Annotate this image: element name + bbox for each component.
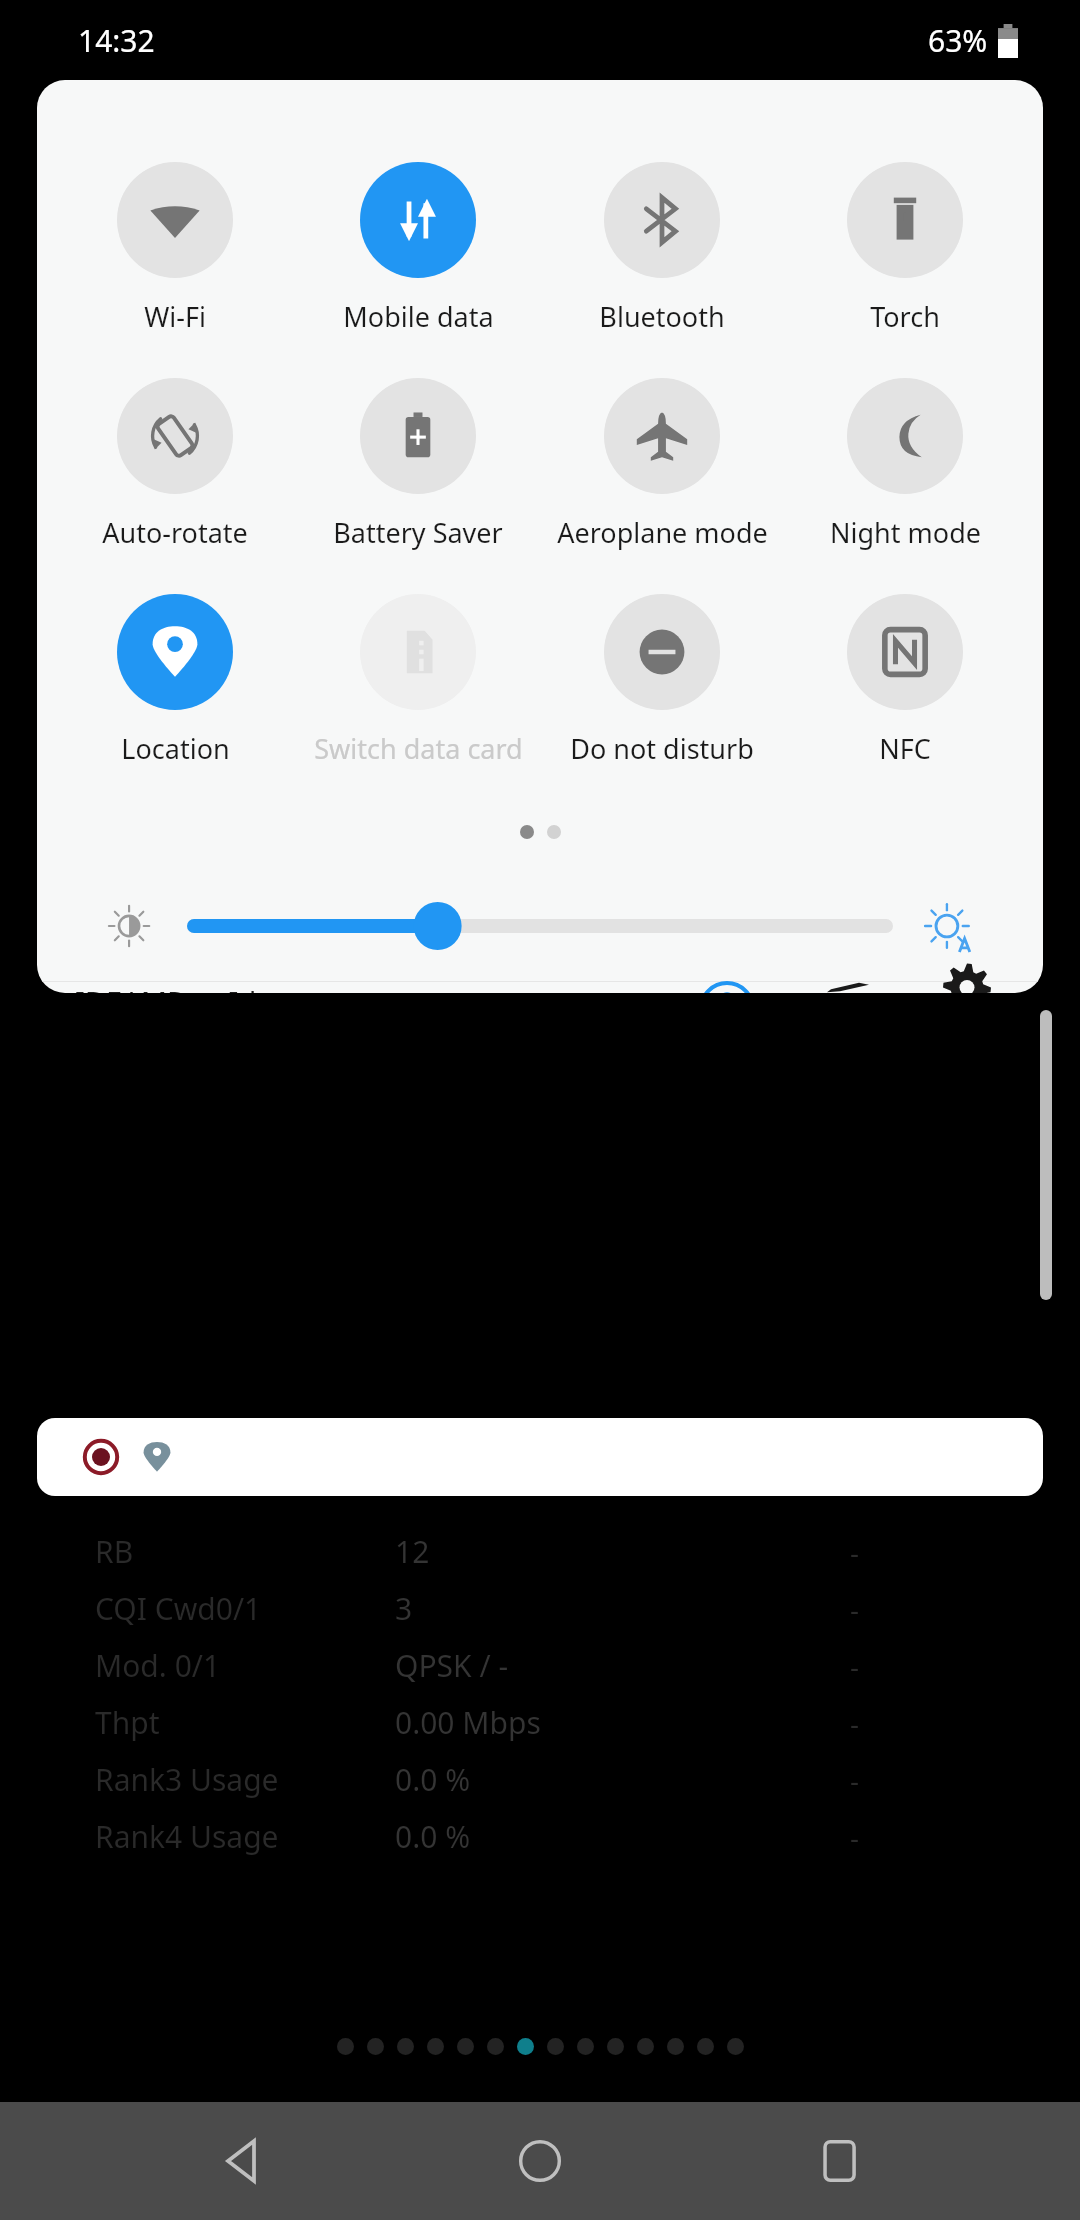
staticText: -	[850, 1818, 860, 1856]
staticText: 63%	[928, 20, 988, 61]
staticText: Auto-rotate	[102, 514, 248, 551]
staticText: Rank4 Usage	[95, 1816, 279, 1857]
button[interactable]: Bluetooth	[547, 162, 777, 335]
staticText: -	[850, 1590, 860, 1628]
button[interactable]: Wi-Fi	[60, 162, 290, 335]
button[interactable]: Night mode	[790, 378, 1020, 551]
button[interactable]: Back	[180, 2102, 300, 2220]
staticText: QPSK / -	[395, 1645, 509, 1686]
button[interactable]: Auto brightness	[913, 890, 985, 962]
button[interactable]: Location	[60, 594, 290, 767]
staticText: Aeroplane mode	[557, 514, 768, 551]
button[interactable]: User	[681, 982, 773, 993]
staticText: NFC	[879, 730, 931, 767]
staticText: -	[850, 1533, 860, 1571]
button[interactable]: Auto-rotate	[60, 378, 290, 551]
staticText: Switch data card	[314, 730, 523, 767]
button[interactable]: Edit	[801, 982, 893, 993]
staticText: -	[850, 1761, 860, 1799]
staticText: -	[850, 1647, 860, 1685]
button[interactable]: Ongoing notifications	[37, 1418, 1043, 1496]
staticText: -	[850, 1704, 860, 1742]
staticText: IDEAMP — Idea	[75, 982, 289, 993]
staticText: Mod. 0/1	[95, 1645, 221, 1686]
staticText: CQI Cwd0/1	[95, 1588, 262, 1629]
staticText: Rank3 Usage	[95, 1759, 279, 1800]
button[interactable]: Torch	[790, 162, 1020, 335]
staticText: Wi-Fi	[144, 298, 206, 335]
staticText: Torch	[870, 298, 940, 335]
button[interactable]: Recents	[780, 2102, 900, 2220]
staticText: 14:32	[78, 20, 155, 61]
staticText: Thpt	[95, 1702, 160, 1743]
button[interactable]: Switch data card	[303, 594, 533, 767]
staticText: Bluetooth	[599, 298, 725, 335]
staticText: Battery Saver	[333, 514, 503, 551]
staticText: RB	[95, 1531, 134, 1572]
button[interactable]: NFC	[790, 594, 1020, 767]
button[interactable]: Mobile data	[303, 162, 533, 335]
button[interactable]: Home	[480, 2102, 600, 2220]
staticText: Night mode	[830, 514, 981, 551]
staticText: Mobile data	[343, 298, 494, 335]
staticText: 0.0 %	[395, 1759, 471, 1800]
button[interactable]: Battery Saver	[303, 378, 533, 551]
staticText: Location	[121, 730, 230, 767]
staticText: 0.0 %	[395, 1816, 471, 1857]
staticText: 0.00 Mbps	[395, 1702, 541, 1743]
button[interactable]: Do not disturb	[547, 594, 777, 767]
button[interactable]: Brightness slider	[187, 898, 893, 954]
button[interactable]: Settings	[921, 982, 1013, 993]
staticText: Do not disturb	[570, 730, 754, 767]
button[interactable]: Low brightness	[95, 890, 167, 962]
button[interactable]: Aeroplane mode	[547, 378, 777, 551]
staticText: 3	[395, 1588, 413, 1629]
staticText: 12	[395, 1531, 430, 1572]
